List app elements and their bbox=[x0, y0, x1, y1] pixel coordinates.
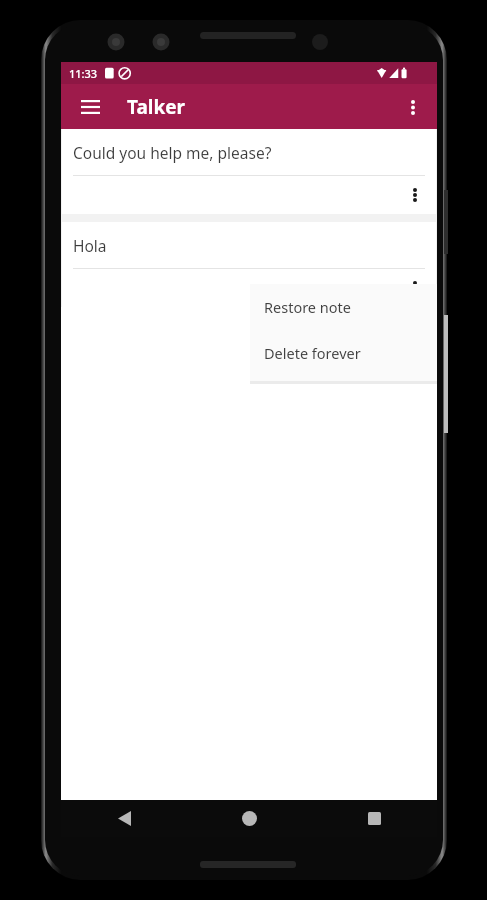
staticText: Talker bbox=[127, 94, 186, 120]
staticText: Could you help me, please? bbox=[73, 142, 272, 163]
button[interactable]: Note options bbox=[398, 271, 432, 305]
staticText: Restore note bbox=[264, 297, 351, 317]
button[interactable]: Could you help me, please? bbox=[62, 129, 436, 214]
button[interactable]: Hola bbox=[62, 222, 436, 307]
staticText: 11:33 bbox=[69, 66, 98, 81]
button[interactable]: Recent apps bbox=[312, 800, 437, 837]
staticText: Delete forever bbox=[264, 343, 361, 363]
button[interactable]: Open navigation drawer bbox=[70, 87, 110, 127]
button[interactable]: Delete forever bbox=[250, 330, 437, 376]
button[interactable]: More options bbox=[393, 87, 433, 127]
staticText: Hola bbox=[73, 235, 107, 256]
button[interactable]: Home bbox=[187, 800, 312, 837]
button[interactable]: Note options bbox=[398, 178, 432, 212]
button[interactable]: Restore note bbox=[250, 284, 437, 330]
button[interactable]: Back bbox=[61, 800, 187, 837]
